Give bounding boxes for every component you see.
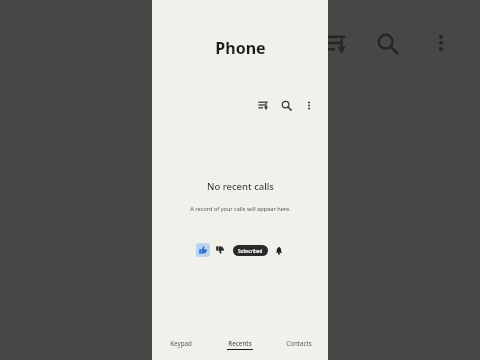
button[interactable]: Search [370,26,404,60]
button[interactable]: Notifications [272,244,285,257]
staticText: Keypad [170,339,192,347]
staticText: Subscribed [238,248,263,254]
button[interactable]: Recents [210,332,269,360]
button[interactable]: Search [277,96,295,114]
staticText: A record of your calls will appear here. [190,205,291,213]
staticText: No recent calls [207,180,274,193]
staticText: Contacts [286,339,312,347]
staticText: Recents [228,339,252,347]
button[interactable]: Sort [318,26,352,60]
button[interactable]: More options [424,26,458,60]
button[interactable]: Contacts [269,332,328,360]
button[interactable]: Subscribed [238,245,263,256]
button[interactable]: Sort [254,96,272,114]
staticText: Phone [215,37,266,59]
button[interactable]: Dislike [213,243,227,257]
button[interactable]: Like [196,243,210,257]
button[interactable]: More options [300,96,318,114]
button[interactable]: Keypad [152,332,210,360]
